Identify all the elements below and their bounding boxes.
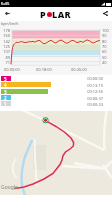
staticText: 125 [0,44,10,49]
button[interactable]: Share [98,7,112,20]
staticText: 1 [4,101,7,106]
staticText: 80 [102,39,112,44]
staticText: 5 [4,76,7,81]
staticText: Google [1,184,18,191]
staticText: 00:18:00 [36,67,52,72]
staticText: bpm/km/h [1,21,19,26]
staticText: 100 [102,28,112,33]
staticText: LAR [52,8,72,20]
staticText: 00:00:00 [78,76,103,81]
staticText: 70 [102,44,112,49]
staticText: 4 [4,82,7,87]
staticText: 40 [102,60,112,65]
button[interactable] [1,95,11,100]
staticText: 142 [0,39,10,44]
staticText: 60 [102,49,112,54]
staticText: 00:13:15 [78,83,103,88]
staticText: P [40,8,47,20]
staticText: 2 [4,95,7,100]
staticText: 00:00:37 [78,96,103,101]
staticText: 160 [0,33,10,38]
staticText: 3 [4,89,7,94]
button[interactable] [1,76,11,81]
staticText: 6:45 [1,1,10,7]
button[interactable]: Back [0,7,14,20]
button[interactable] [1,101,11,106]
staticText: 00:00:23 [78,102,103,107]
staticText: 178 [0,28,10,33]
staticText: 00:00:00 [4,67,20,72]
button[interactable] [1,89,48,94]
staticText: 00:12:55 [78,89,103,94]
staticText: 90 [102,33,112,38]
staticText: 00:26:00 [71,67,87,72]
button[interactable] [1,82,51,87]
staticText: 107 [0,49,10,54]
staticText: 89 [0,55,10,60]
staticText: 71 [0,60,10,65]
staticText: 50 [102,55,112,60]
